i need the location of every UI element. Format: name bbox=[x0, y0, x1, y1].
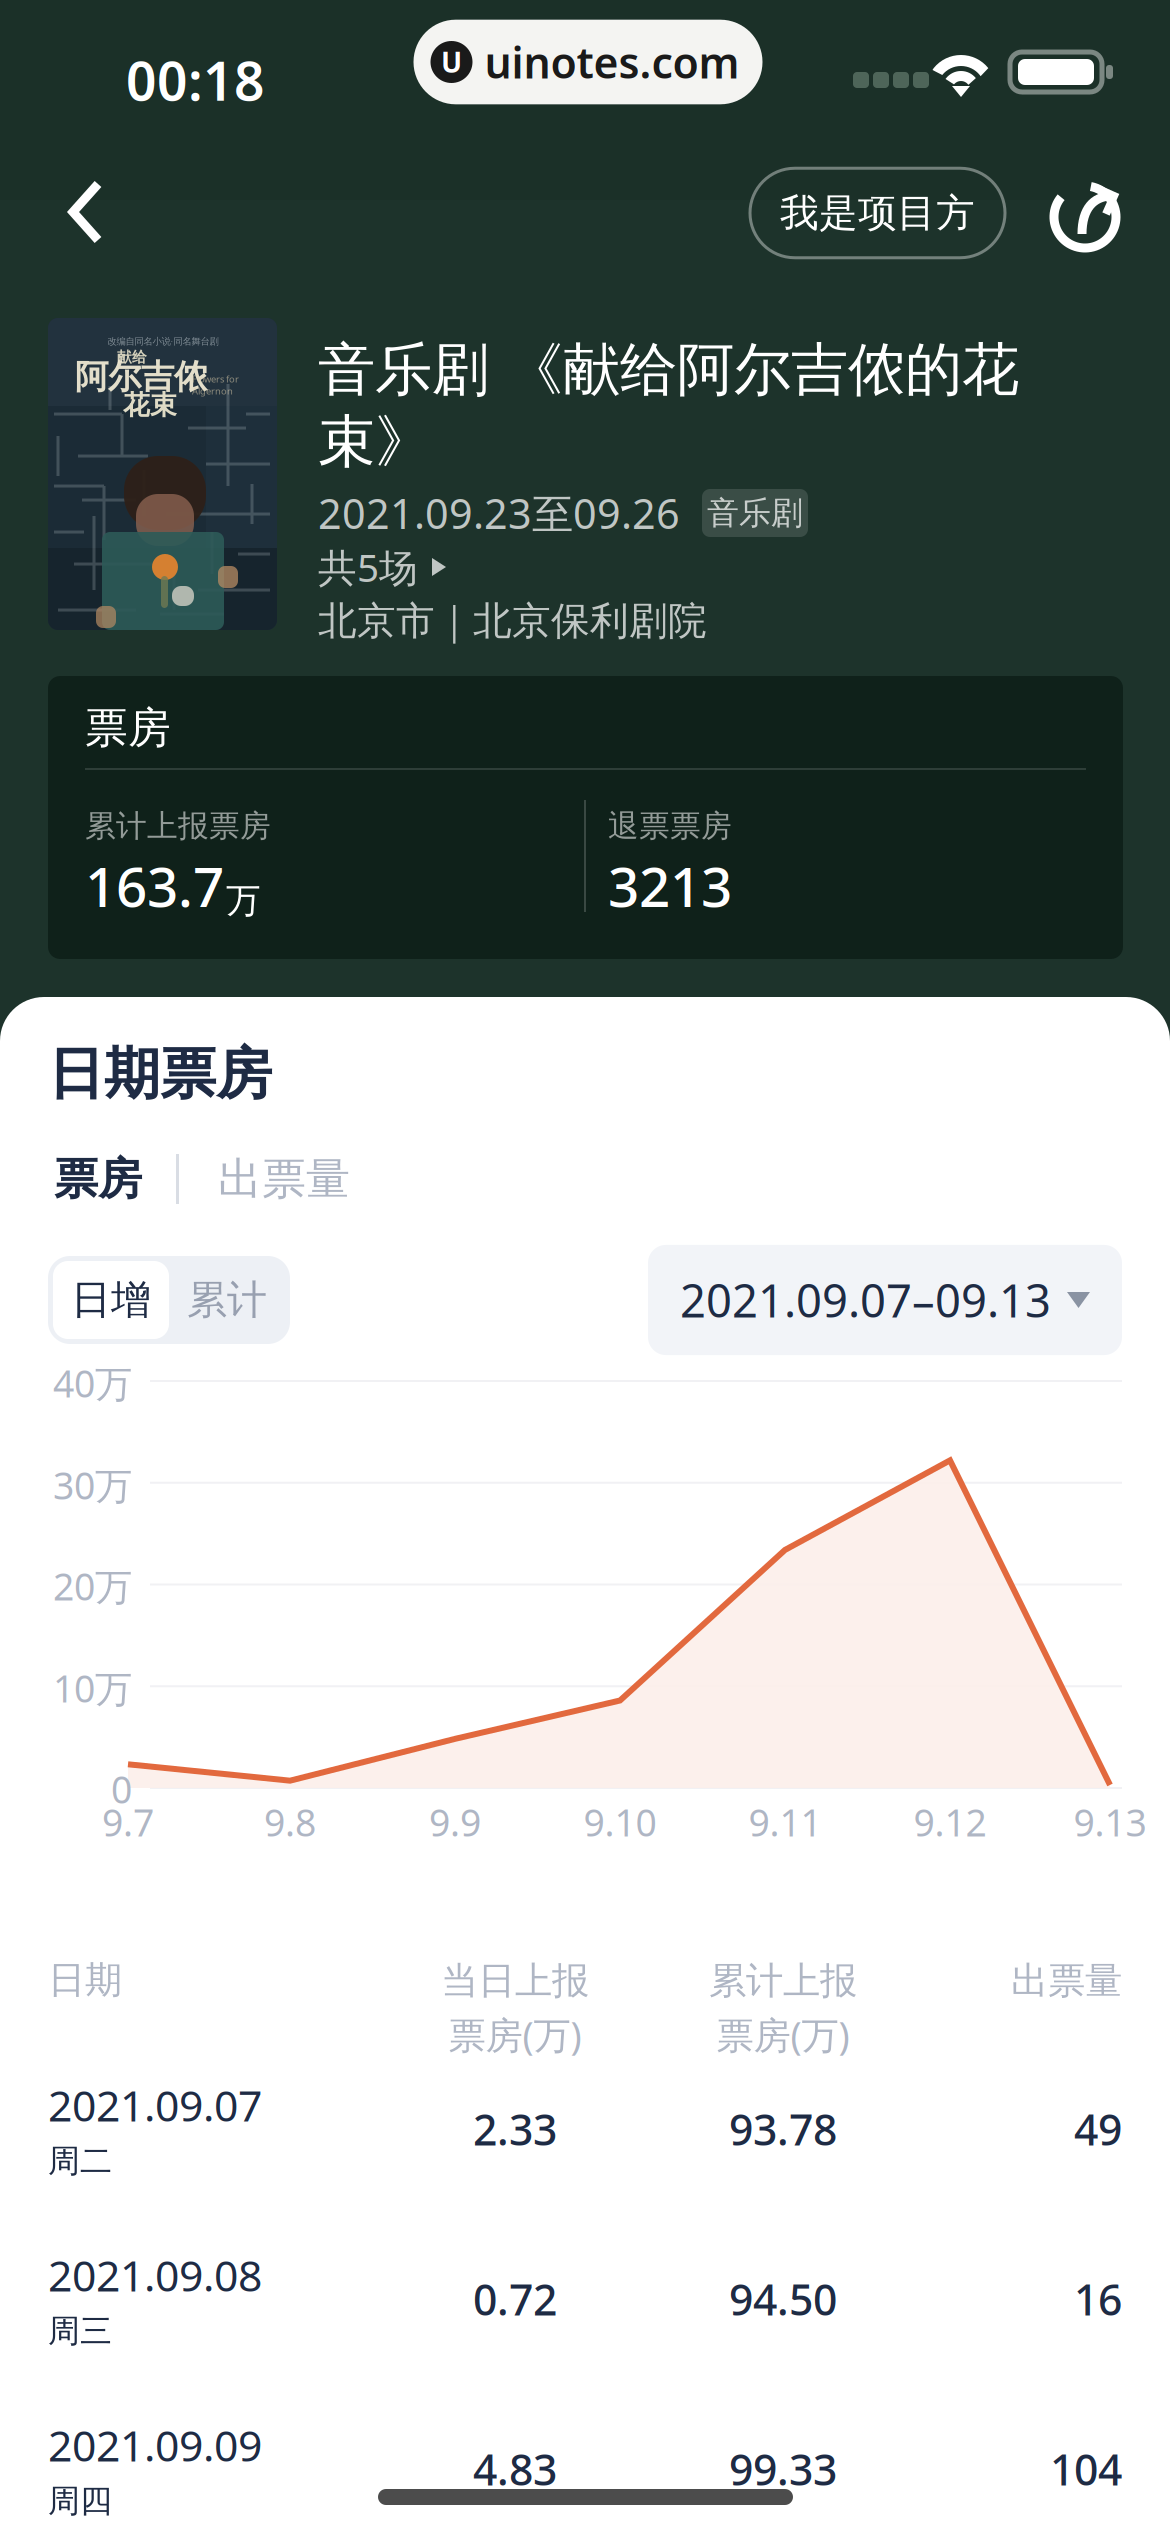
staticText: 99.33 bbox=[729, 2441, 837, 2497]
staticText: 万 bbox=[226, 879, 261, 922]
staticText: 0.72 bbox=[473, 2271, 557, 2327]
staticText: 4.83 bbox=[473, 2441, 557, 2497]
staticText: 16 bbox=[1074, 2271, 1122, 2327]
staticText: 20万 bbox=[53, 1561, 132, 1611]
staticText: 日期票房 bbox=[48, 1040, 272, 1108]
staticText: 2021.09.07–09.13 bbox=[680, 1270, 1051, 1330]
button[interactable]: 出票量 bbox=[214, 1150, 354, 1208]
staticText: 出票量 bbox=[218, 1152, 350, 1206]
staticText: 束》 bbox=[318, 407, 432, 477]
staticText: 9.12 bbox=[913, 1797, 986, 1847]
staticText: 日增 bbox=[71, 1275, 151, 1324]
staticText: 2021.09.08 bbox=[48, 2247, 262, 2303]
staticText: 当日上报 bbox=[441, 1958, 589, 2004]
staticText: 共5场 bbox=[318, 541, 418, 593]
staticText: 2.33 bbox=[473, 2101, 557, 2157]
staticText: 票房 bbox=[85, 702, 171, 754]
staticText: 2021.09.23至09.26 bbox=[318, 486, 680, 540]
staticText: 票房(万) bbox=[448, 2010, 581, 2059]
staticText: 献给 bbox=[117, 348, 147, 366]
staticText: 9.9 bbox=[429, 1797, 481, 1847]
staticText: 票房(万) bbox=[716, 2010, 849, 2059]
staticText: 93.78 bbox=[729, 2101, 837, 2157]
staticText: 40万 bbox=[53, 1358, 132, 1408]
staticText: 周二 bbox=[48, 2141, 112, 2181]
staticText: 周三 bbox=[48, 2311, 112, 2351]
staticText: 10万 bbox=[53, 1663, 132, 1713]
button[interactable]: Back bbox=[40, 156, 160, 268]
staticText: 累计上报 bbox=[709, 1958, 857, 2004]
staticText: 累计上报票房 bbox=[85, 807, 271, 845]
staticText: 2021.09.09 bbox=[48, 2417, 262, 2473]
staticText: 退票票房 bbox=[608, 807, 732, 845]
staticText: 改编自同名小说·同名舞台剧 bbox=[107, 335, 218, 347]
button[interactable]: 票房 bbox=[48, 1150, 148, 1208]
staticText: uinotes.com bbox=[484, 34, 739, 90]
staticText: 9.13 bbox=[1073, 1797, 1146, 1847]
staticText: 163.7 bbox=[85, 849, 224, 922]
staticText: Algernon bbox=[192, 385, 233, 397]
button[interactable]: 日增 bbox=[48, 1256, 290, 1344]
staticText: 累计 bbox=[187, 1275, 267, 1324]
staticText: 北京市｜北京保利剧院 bbox=[318, 597, 707, 645]
staticText: 9.7 bbox=[102, 1797, 154, 1847]
staticText: 3213 bbox=[608, 849, 732, 922]
staticText: 我是项目方 bbox=[780, 189, 975, 237]
staticText: 音乐剧 bbox=[707, 493, 803, 533]
staticText: 00:18 bbox=[126, 45, 265, 115]
button[interactable]: Share bbox=[1038, 164, 1134, 260]
staticText: 9.11 bbox=[748, 1797, 821, 1847]
staticText: U bbox=[441, 43, 462, 81]
staticText: 9.8 bbox=[264, 1797, 316, 1847]
staticText: 音乐剧 《献给阿尔吉侬的花 bbox=[318, 335, 1019, 405]
staticText: 2021.09.07 bbox=[48, 2077, 262, 2133]
button[interactable]: 我是项目方 bbox=[750, 168, 1005, 258]
staticText: 94.50 bbox=[729, 2271, 837, 2327]
staticText: 出票量 bbox=[1011, 1958, 1122, 2004]
button[interactable]: 2021.09.07–09.13 bbox=[648, 1245, 1122, 1355]
staticText: 日期 bbox=[48, 1957, 122, 2003]
staticText: 周四 bbox=[48, 2481, 112, 2521]
staticText: 49 bbox=[1074, 2101, 1122, 2157]
staticText: 9.10 bbox=[583, 1797, 656, 1847]
staticText: 票房 bbox=[54, 1152, 142, 1206]
staticText: 104 bbox=[1050, 2441, 1122, 2497]
staticText: 30万 bbox=[53, 1460, 132, 1510]
staticText: 0 bbox=[111, 1764, 132, 1814]
staticText: Flowers for bbox=[192, 373, 239, 385]
staticText: 阿尔吉侬 bbox=[75, 356, 207, 397]
staticText: 花束 bbox=[123, 389, 177, 421]
